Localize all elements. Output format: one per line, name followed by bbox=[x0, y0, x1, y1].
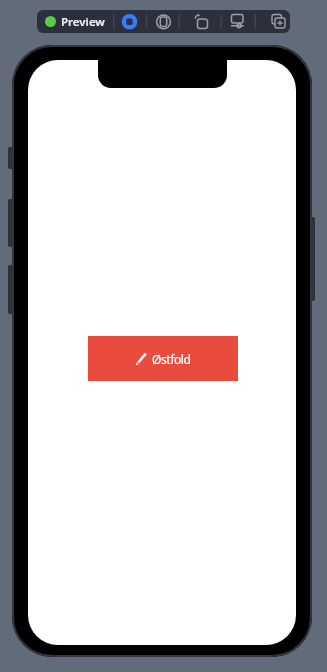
button[interactable] bbox=[265, 10, 290, 33]
button[interactable] bbox=[189, 10, 214, 33]
staticText: Østfold bbox=[152, 351, 191, 367]
button[interactable]: Østfold bbox=[88, 336, 238, 381]
button[interactable] bbox=[151, 10, 176, 33]
button[interactable]: Preview bbox=[45, 10, 105, 33]
staticText: Preview bbox=[61, 14, 105, 30]
button[interactable] bbox=[225, 10, 250, 33]
button[interactable] bbox=[117, 10, 142, 33]
